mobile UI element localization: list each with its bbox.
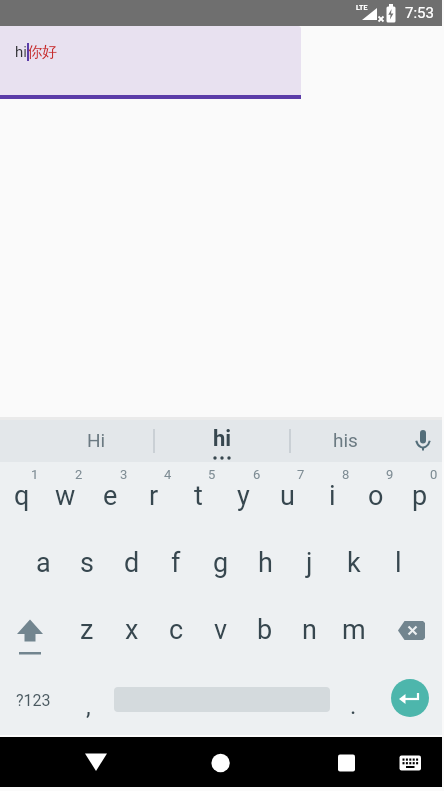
button[interactable]: hi [186, 423, 258, 455]
staticText: l [395, 547, 402, 579]
staticText: t [194, 480, 203, 512]
button[interactable]: ?123 [11, 684, 55, 716]
staticText: ?123 [16, 691, 51, 710]
staticText: 8 [342, 467, 350, 482]
button[interactable]: q [0, 467, 44, 525]
staticText: 9 [386, 467, 394, 482]
staticText: g [213, 547, 229, 579]
button[interactable] [388, 740, 432, 784]
button[interactable]: z [65, 601, 109, 659]
staticText: LTE [356, 4, 368, 12]
staticText: r [149, 480, 159, 512]
button[interactable]: v [199, 601, 243, 659]
staticText: s [80, 547, 94, 579]
staticText: i [329, 480, 336, 512]
staticText: y [237, 480, 250, 512]
staticText: his [333, 429, 358, 451]
staticText: j [306, 547, 313, 579]
button[interactable]: u [265, 467, 309, 525]
button[interactable]: c [154, 601, 198, 659]
staticText: a [36, 547, 51, 579]
staticText: 7:53 [405, 4, 434, 22]
button[interactable]: p [398, 467, 442, 525]
staticText: f [171, 547, 181, 579]
button[interactable]: his [309, 424, 381, 456]
button[interactable] [324, 740, 368, 784]
button[interactable]: f [154, 534, 198, 592]
staticText: b [257, 614, 273, 646]
button[interactable]: t [176, 467, 220, 525]
staticText: 4 [164, 467, 172, 482]
staticText: m [342, 614, 366, 646]
button[interactable] [7, 608, 51, 656]
button[interactable]: n [287, 601, 331, 659]
staticText: w [55, 480, 76, 512]
button[interactable]: e [88, 467, 132, 525]
staticText: 6 [253, 467, 261, 482]
staticText: z [80, 614, 94, 646]
button[interactable] [74, 740, 118, 784]
button[interactable]: o [354, 467, 398, 525]
staticText: e [103, 480, 118, 512]
staticText: . [350, 692, 357, 720]
staticText: Hi [87, 429, 106, 451]
button[interactable] [198, 740, 242, 784]
staticText: h [258, 547, 273, 579]
button[interactable]: i [310, 467, 354, 525]
staticText: p [412, 480, 428, 512]
button[interactable]: r [132, 467, 176, 525]
staticText: hi [213, 426, 232, 452]
staticText: o [368, 480, 384, 512]
button[interactable]: m [332, 601, 376, 659]
button[interactable]: a [21, 534, 65, 592]
staticText: 5 [208, 467, 216, 482]
button[interactable]: k [332, 534, 376, 592]
staticText: n [302, 614, 317, 646]
staticText: x [125, 614, 139, 646]
staticText: 0 [430, 467, 438, 482]
button[interactable]: x [110, 601, 154, 659]
staticText: q [14, 480, 30, 512]
button[interactable]: Hi [60, 424, 132, 456]
button[interactable]: g [199, 534, 243, 592]
button[interactable] [405, 425, 439, 457]
staticText: 3 [120, 467, 128, 482]
button[interactable]: y [221, 467, 265, 525]
button[interactable]: b [243, 601, 287, 659]
staticText: d [124, 547, 140, 579]
staticText: u [280, 480, 295, 512]
button[interactable]: d [110, 534, 154, 592]
staticText: 7 [297, 467, 305, 482]
staticText: , [86, 693, 91, 721]
button[interactable]: h [243, 534, 287, 592]
staticText: v [214, 614, 228, 646]
button[interactable] [390, 608, 434, 656]
button[interactable]: l [376, 534, 420, 592]
button[interactable] [391, 679, 429, 717]
button[interactable]: . [335, 687, 371, 725]
button[interactable]: , [70, 688, 106, 726]
staticText: 1 [31, 467, 39, 482]
staticText: hi你好 [15, 43, 57, 62]
button[interactable] [0, 26, 301, 96]
staticText: 2 [75, 467, 83, 482]
staticText: c [169, 614, 184, 646]
staticText: k [347, 547, 361, 579]
button[interactable]: w [43, 467, 87, 525]
button[interactable]: s [65, 534, 109, 592]
button[interactable]: j [287, 534, 331, 592]
